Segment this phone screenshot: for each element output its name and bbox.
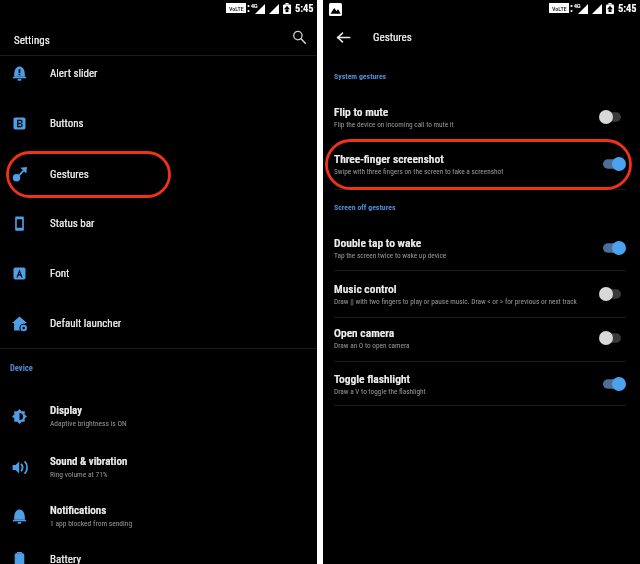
staticText: Adaptive brightness is ON (50, 419, 127, 428)
staticText: 5:45 (618, 2, 637, 14)
staticText: Alert slider (50, 67, 98, 80)
button[interactable]: Three-finger screenshot (323, 142, 640, 186)
staticText: Double tap to wake (334, 236, 422, 249)
staticText: VoLTE (552, 5, 567, 12)
staticText: Tap the screen twice to wake up device (334, 251, 447, 260)
button[interactable]: Alert slider (0, 48, 317, 98)
staticText: 1 app blocked from sending (50, 519, 133, 528)
staticText: Flip the device on incoming call to mute… (334, 120, 454, 129)
button[interactable]: Sound & vibration (0, 442, 317, 492)
staticText: Draw a V to toggle the flashlight (334, 387, 426, 396)
button[interactable]: Double tap to wake (323, 226, 640, 270)
staticText: Settings (14, 34, 50, 47)
staticText: Gestures (373, 31, 412, 44)
staticText: Music control (334, 282, 397, 295)
staticText: Notifications (50, 504, 107, 517)
staticText: Display (50, 404, 82, 417)
staticText: Flip to mute (334, 105, 389, 118)
staticText: Open camera (334, 326, 395, 339)
staticText: Swipe with three fingers on the screen t… (334, 167, 504, 176)
staticText: Ring volume at 71% (50, 470, 108, 479)
button[interactable]: Status bar (0, 198, 317, 248)
staticText: Screen off gestures (334, 203, 396, 212)
button[interactable]: Default launcher (0, 298, 317, 348)
button[interactable]: Back (333, 27, 353, 47)
staticText: Status bar (50, 217, 95, 230)
button[interactable]: Music control (323, 272, 640, 316)
staticText: 4G (574, 2, 581, 9)
staticText: Device (10, 363, 33, 373)
button[interactable]: Notifications (0, 491, 317, 541)
button[interactable]: Battery (0, 534, 317, 564)
staticText: Gestures (50, 168, 89, 181)
staticText: 4G (251, 2, 258, 9)
button[interactable]: Settings (0, 20, 317, 61)
staticText: Draw an O to open camera (334, 341, 410, 350)
button[interactable]: Display (0, 391, 317, 441)
staticText: Buttons (50, 117, 84, 130)
staticText: VoLTE (229, 5, 244, 12)
button[interactable]: Font (0, 248, 317, 298)
button[interactable]: Open camera (323, 316, 640, 360)
button[interactable]: Search (286, 24, 311, 49)
staticText: System gestures (334, 72, 387, 81)
button[interactable]: Buttons (0, 98, 317, 148)
staticText: Font (50, 267, 70, 280)
staticText: Draw || with two fingers to play or paus… (334, 297, 577, 306)
staticText: Default launcher (50, 317, 122, 330)
staticText: 5:45 (295, 2, 314, 14)
staticText: Three-finger screenshot (334, 152, 444, 165)
button[interactable]: Flip to mute (323, 95, 640, 139)
staticText: Toggle flashlight (334, 372, 411, 385)
staticText: Sound & vibration (50, 455, 128, 468)
button[interactable]: Toggle flashlight (323, 362, 640, 406)
button[interactable]: Gestures (0, 149, 317, 199)
staticText: Battery (50, 553, 81, 564)
